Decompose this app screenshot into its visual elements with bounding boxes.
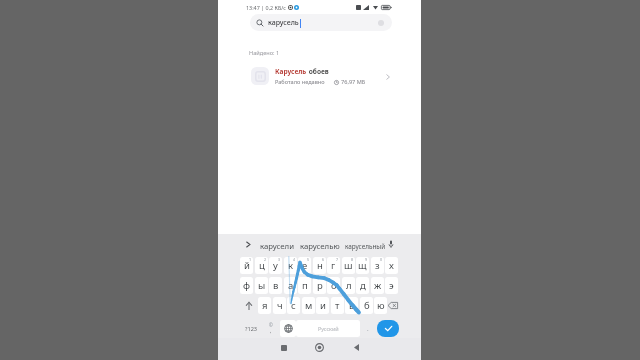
button[interactable]: карусели	[260, 240, 295, 252]
staticText: й	[244, 259, 250, 272]
button[interactable]: ш	[342, 257, 355, 274]
button[interactable]: карусель	[250, 14, 392, 31]
staticText: щ	[358, 259, 367, 272]
button[interactable]: Регистр	[240, 297, 257, 314]
button[interactable]: е	[298, 257, 311, 274]
staticText: ш	[344, 259, 353, 272]
staticText: е	[302, 259, 308, 272]
button[interactable]: р	[313, 277, 326, 294]
button[interactable]: з	[371, 257, 384, 274]
button[interactable]: г	[327, 257, 340, 274]
button[interactable]: л	[342, 277, 355, 294]
staticText: з	[375, 259, 380, 272]
button[interactable]: Сменить язык	[280, 320, 296, 337]
button[interactable]: и	[316, 297, 329, 314]
staticText: 0	[380, 257, 383, 262]
staticText: Карусель	[275, 67, 307, 76]
button[interactable]: в	[269, 277, 282, 294]
staticText: 1	[249, 257, 252, 262]
button[interactable]: н	[313, 257, 326, 274]
button[interactable]: ?123	[240, 320, 262, 337]
button[interactable]: ю	[374, 297, 387, 314]
button[interactable]: Удалить	[387, 297, 399, 314]
button[interactable]: Русский	[296, 320, 360, 337]
button[interactable]: карусельный	[345, 240, 386, 252]
staticText: т	[335, 299, 340, 312]
staticText: п	[302, 279, 308, 292]
button[interactable]: Назад	[350, 341, 363, 354]
staticText: м	[305, 299, 313, 312]
staticText: Работало недавно	[275, 78, 325, 86]
staticText: г	[331, 259, 336, 272]
button[interactable]: ц	[255, 257, 268, 274]
staticText: карусели	[260, 241, 295, 252]
staticText: и	[320, 299, 326, 312]
staticText: к	[288, 259, 294, 272]
staticText: ф	[243, 279, 251, 292]
button[interactable]: й	[240, 257, 253, 274]
button[interactable]: Очистить	[378, 20, 384, 26]
staticText: ю	[377, 299, 385, 312]
staticText: ы	[258, 279, 266, 292]
button[interactable]: Ещё варианты	[244, 240, 253, 249]
button[interactable]: т	[331, 297, 344, 314]
staticText: н	[317, 259, 323, 272]
staticText: д	[360, 279, 366, 292]
staticText: х	[389, 259, 394, 272]
button[interactable]: ч	[273, 297, 286, 314]
staticText: 5	[307, 257, 310, 262]
button[interactable]: п	[298, 277, 311, 294]
button[interactable]: х	[385, 257, 398, 274]
staticText: обоев	[307, 67, 329, 76]
staticText: 3	[278, 257, 281, 262]
staticText: а	[288, 279, 294, 292]
staticText: я	[262, 299, 268, 312]
button[interactable]: к	[284, 257, 297, 274]
staticText: ©	[269, 322, 273, 328]
staticText: 6	[322, 257, 325, 262]
button[interactable]: Карусель	[218, 62, 421, 90]
staticText: ,	[270, 328, 272, 335]
button[interactable]: каруселью	[300, 240, 340, 252]
staticText: ч	[277, 299, 283, 312]
staticText: у	[273, 259, 278, 272]
staticText: 8	[351, 257, 354, 262]
staticText: 76,97 МБ	[341, 78, 366, 86]
button[interactable]: м	[302, 297, 315, 314]
button[interactable]: Ввод	[377, 320, 399, 337]
staticText: 13:47 | 0,2 КБ/с	[246, 4, 286, 11]
button[interactable]: ь	[345, 297, 358, 314]
staticText: карусель	[268, 18, 299, 28]
button[interactable]: д	[356, 277, 369, 294]
staticText: о	[331, 279, 337, 292]
staticText: ?123	[245, 325, 258, 333]
button[interactable]: о	[327, 277, 340, 294]
staticText: в	[273, 279, 279, 292]
staticText: карусельный	[345, 242, 386, 251]
button[interactable]: б	[360, 297, 373, 314]
staticText: ж	[374, 279, 382, 292]
staticText: 9	[365, 257, 368, 262]
button[interactable]: ©	[263, 320, 278, 337]
button[interactable]: Главный экран	[313, 341, 326, 354]
staticText: р	[317, 279, 323, 292]
button[interactable]: а	[284, 277, 297, 294]
button[interactable]: я	[258, 297, 271, 314]
staticText: с	[291, 299, 296, 312]
staticText: Русский	[318, 325, 339, 332]
staticText: 7	[336, 257, 339, 262]
staticText: ь	[349, 299, 355, 312]
button[interactable]: с	[287, 297, 300, 314]
staticText: б	[364, 299, 370, 312]
staticText: э	[389, 279, 394, 292]
button[interactable]: у	[269, 257, 282, 274]
button[interactable]: щ	[356, 257, 369, 274]
button[interactable]: ы	[255, 277, 268, 294]
button[interactable]: э	[385, 277, 398, 294]
button[interactable]: Недавние приложения	[277, 341, 290, 354]
staticText: каруселью	[300, 241, 340, 252]
button[interactable]: ж	[371, 277, 384, 294]
button[interactable]: Голосовой ввод	[386, 240, 396, 248]
button[interactable]: ф	[240, 277, 253, 294]
